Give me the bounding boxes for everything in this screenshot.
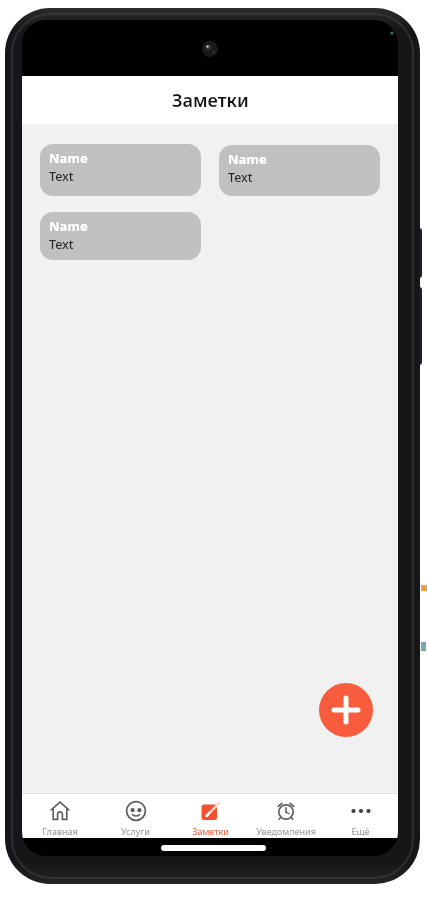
staticText: Уведомления [256, 825, 316, 837]
button[interactable]: Уведомления [248, 793, 323, 838]
staticText: Главная [42, 825, 78, 837]
staticText: Заметки [192, 825, 229, 837]
staticText: Name [228, 150, 267, 168]
staticText: Услуги [121, 825, 150, 837]
button[interactable]: Ещё [323, 793, 398, 838]
button[interactable] [319, 683, 373, 737]
staticText: Заметки [172, 88, 249, 113]
button[interactable]: Name [219, 145, 380, 196]
button[interactable]: Name [40, 212, 201, 260]
staticText: Text [228, 169, 253, 186]
button[interactable]: Главная [22, 793, 98, 838]
button[interactable]: Заметки [173, 793, 248, 838]
staticText: Text [49, 168, 74, 185]
button[interactable]: Name [40, 144, 201, 196]
button[interactable]: Услуги [98, 793, 173, 838]
staticText: Ещё [351, 825, 370, 837]
staticText: Text [49, 236, 74, 253]
staticText: Name [49, 217, 88, 235]
staticText: Name [49, 149, 88, 167]
